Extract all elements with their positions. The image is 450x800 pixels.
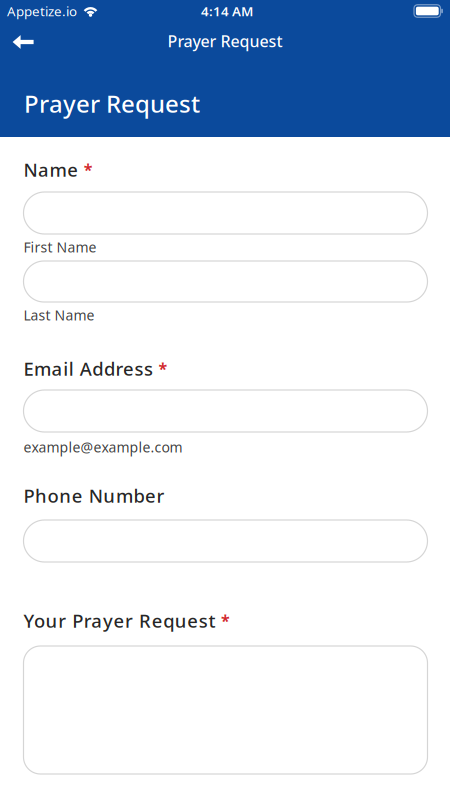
staticText: * bbox=[221, 609, 230, 631]
staticText: Prayer Request bbox=[167, 30, 282, 52]
button[interactable]: Text field bbox=[23, 192, 427, 234]
button[interactable]: Text field bbox=[23, 390, 427, 432]
staticText: example@example.com bbox=[23, 437, 182, 457]
staticText: Phone Number bbox=[23, 483, 164, 508]
staticText: 4:14 AM bbox=[201, 2, 253, 20]
staticText: Email Address bbox=[23, 356, 153, 381]
button[interactable]: Text field bbox=[23, 261, 427, 302]
staticText: Last Name bbox=[23, 305, 94, 325]
staticText: Appetize.io bbox=[7, 2, 77, 20]
staticText: First Name bbox=[23, 237, 96, 257]
button[interactable]: Text field bbox=[23, 520, 427, 562]
staticText: Prayer Request bbox=[24, 87, 200, 120]
staticText: Your Prayer Request bbox=[23, 608, 215, 633]
staticText: * bbox=[84, 158, 93, 180]
staticText: * bbox=[159, 357, 168, 379]
staticText: Name bbox=[23, 157, 78, 182]
button[interactable]: Back bbox=[0, 21, 50, 56]
button[interactable]: Text field bbox=[23, 646, 427, 774]
